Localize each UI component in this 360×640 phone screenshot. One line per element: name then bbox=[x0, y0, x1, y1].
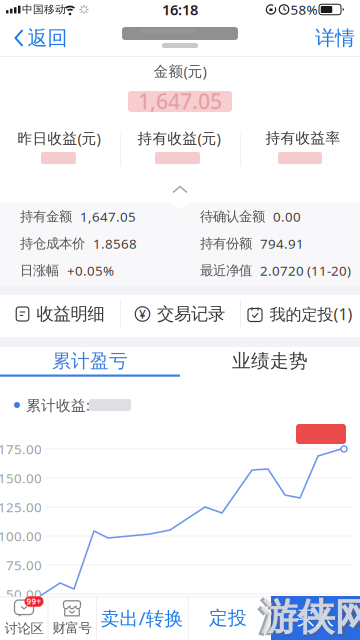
staticText: 持有收益率 bbox=[265, 129, 340, 147]
staticText: 持有份额 bbox=[200, 235, 252, 252]
staticText: 卖出/转换 bbox=[100, 606, 183, 630]
staticText: 持仓成本价 bbox=[20, 235, 85, 252]
staticText: 2.0720 (11-20) bbox=[260, 262, 351, 279]
staticText: 16:18 bbox=[162, 0, 198, 19]
staticText: 持有金额 bbox=[20, 208, 72, 225]
button[interactable]: 财富号 bbox=[49, 597, 95, 639]
staticText: 交易记录 bbox=[157, 303, 225, 325]
staticText: 昨日收益(元) bbox=[17, 128, 100, 148]
button[interactable]: 买入 bbox=[271, 596, 360, 640]
staticText: 游侠网 bbox=[257, 593, 360, 640]
staticText: 详情 bbox=[315, 26, 355, 50]
staticText: 99+ bbox=[26, 596, 41, 607]
staticText: 1,647.05 bbox=[80, 208, 136, 225]
staticText: 100.00 bbox=[0, 527, 42, 545]
staticText: 我的定投(1) bbox=[269, 303, 352, 325]
staticText: 金额(元) bbox=[153, 61, 206, 81]
staticText: 最近净值 bbox=[200, 262, 252, 279]
staticText: 返回 bbox=[27, 26, 67, 50]
staticText: +0.05% bbox=[67, 262, 114, 279]
staticText: 175.00 bbox=[0, 440, 42, 458]
staticText: 累计盈亏 bbox=[52, 349, 128, 372]
button[interactable]: 定投 bbox=[188, 596, 268, 639]
staticText: 持有收益(元) bbox=[137, 128, 220, 148]
staticText: 150.00 bbox=[0, 469, 42, 487]
staticText: 125.00 bbox=[0, 498, 42, 516]
staticText: ¥ bbox=[139, 306, 146, 322]
staticText: 1.8568 bbox=[93, 235, 137, 252]
staticText: 50.00 bbox=[6, 585, 42, 603]
staticText: 日涨幅 bbox=[20, 262, 59, 279]
staticText: 待确认金额 bbox=[200, 208, 265, 225]
staticText: 业绩走势 bbox=[232, 349, 308, 372]
staticText: 收益明细 bbox=[36, 303, 104, 325]
button[interactable]: 收益明细 bbox=[1, 294, 119, 334]
button[interactable]: 讨论区 bbox=[1, 597, 47, 639]
staticText: 1,647.05 bbox=[138, 87, 222, 115]
staticText: 794.91 bbox=[260, 235, 304, 252]
staticText: 累计收益: bbox=[26, 395, 90, 415]
button[interactable]: 业绩走势 bbox=[180, 347, 360, 375]
button[interactable]: 收起 bbox=[169, 182, 191, 196]
staticText: 58% bbox=[290, 1, 317, 18]
staticText: 75.00 bbox=[6, 556, 42, 574]
button[interactable]: 卖出/转换 bbox=[97, 596, 187, 639]
staticText: 中国移动 bbox=[22, 3, 66, 16]
button[interactable]: 详情 bbox=[310, 23, 360, 53]
staticText: 财富号 bbox=[52, 620, 91, 636]
staticText: 买入 bbox=[296, 606, 334, 629]
button[interactable]: 累计盈亏 bbox=[0, 347, 180, 375]
button[interactable]: 返回 bbox=[10, 23, 72, 53]
button[interactable]: ¥ bbox=[121, 294, 239, 334]
button[interactable]: 我的定投(1) bbox=[241, 294, 359, 334]
staticText: 0.00 bbox=[273, 208, 301, 225]
staticText: 讨论区 bbox=[4, 620, 43, 637]
staticText: 定投 bbox=[209, 606, 247, 629]
staticText: 游侠网 bbox=[260, 594, 360, 640]
